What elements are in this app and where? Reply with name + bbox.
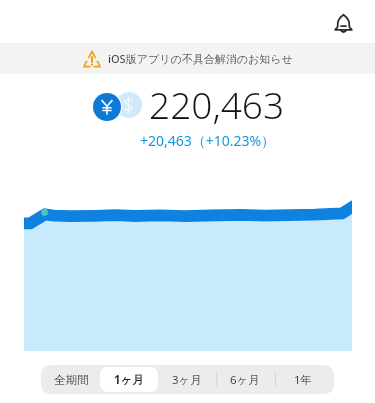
staticText: 1ヶ月	[114, 372, 144, 388]
button[interactable]: iOS版アプリの不具合解消のお知らせ	[0, 43, 375, 74]
staticText: 全期間	[54, 373, 89, 387]
staticText: +20,463（+10.23%）	[20, 131, 375, 150]
staticText: 6ヶ月	[230, 372, 260, 388]
button[interactable]: 1ヶ月	[100, 367, 158, 392]
button[interactable]: Notifications	[329, 8, 357, 36]
button[interactable]: 6ヶ月	[216, 367, 274, 392]
button[interactable]: US dollar	[116, 92, 142, 118]
staticText: 220,463	[149, 79, 285, 129]
staticText: 3ヶ月	[172, 372, 202, 388]
button[interactable]: 1年	[274, 367, 332, 392]
staticText: 1年	[294, 372, 313, 388]
button[interactable]: 3ヶ月	[158, 367, 216, 392]
button[interactable]: 全期間	[43, 367, 100, 392]
button[interactable]: Japanese yen	[91, 91, 122, 122]
staticText: iOS版アプリの不具合解消のお知らせ	[108, 51, 293, 66]
